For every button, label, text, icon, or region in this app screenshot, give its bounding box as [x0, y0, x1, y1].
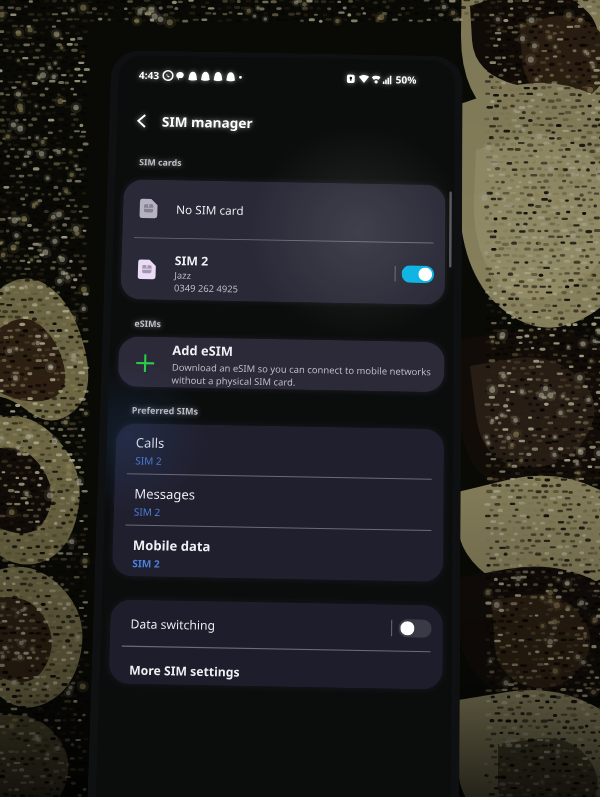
staticText: Add eSIM: [172, 341, 234, 360]
button[interactable]: Turn off SIM 2: [401, 265, 434, 283]
staticText: SIM 2: [134, 504, 161, 519]
staticText: 0349 262 4925: [174, 281, 238, 295]
button[interactable]: Data switching: [110, 599, 443, 652]
button[interactable]: SIM 2: [120, 238, 445, 305]
staticText: Messages: [134, 484, 196, 503]
staticText: Jazz: [174, 269, 191, 282]
staticText: Mobile data: [133, 536, 211, 555]
button[interactable]: Data switching: [110, 599, 443, 652]
button[interactable]: Turn on data switching: [398, 619, 432, 638]
staticText: SIM cards: [139, 156, 182, 168]
staticText: Download an eSIM so you can connect to m…: [171, 361, 432, 391]
staticText: SIM cards: [139, 156, 182, 168]
staticText: 4:43: [139, 68, 159, 82]
staticText: SIM 2: [135, 453, 162, 468]
button[interactable]: Messages: [113, 474, 444, 530]
staticText: SIM 2: [132, 556, 161, 571]
button[interactable]: More SIM settings: [108, 646, 443, 690]
staticText: No SIM card: [176, 201, 244, 218]
staticText: Mobile data: [133, 536, 211, 555]
button[interactable]: Add eSIM: [118, 336, 445, 392]
staticText: Messages: [134, 484, 196, 503]
staticText: More SIM settings: [129, 661, 240, 680]
staticText: SIM 2: [174, 252, 208, 269]
staticText: eSIMs: [134, 317, 161, 329]
button[interactable]: Mobile data: [112, 525, 443, 582]
button[interactable]: No SIM card: [122, 179, 445, 243]
staticText: More SIM settings: [129, 661, 240, 680]
staticText: SIM manager: [162, 112, 253, 132]
button[interactable]: More SIM settings: [108, 646, 443, 690]
button[interactable]: No SIM card: [122, 179, 445, 243]
staticText: Add eSIM: [172, 341, 234, 360]
staticText: SIM 2: [135, 453, 162, 468]
button[interactable]: Calls: [115, 423, 444, 479]
staticText: 0349 262 4925: [174, 281, 238, 295]
staticText: Calls: [136, 433, 165, 452]
staticText: Data switching: [130, 615, 216, 633]
staticText: 50%: [395, 73, 417, 87]
staticText: Download an eSIM so you can connect to m…: [171, 361, 432, 391]
staticText: 4:43: [139, 68, 159, 82]
button[interactable]: Turn on data switching: [398, 619, 432, 638]
staticText: SIM 2: [174, 252, 208, 269]
staticText: Data switching: [130, 615, 216, 633]
button[interactable]: Mobile data: [112, 525, 443, 582]
staticText: Preferred SIMs: [132, 403, 199, 417]
staticText: SIM 2: [132, 556, 161, 571]
staticText: 50%: [395, 73, 417, 87]
staticText: SIM manager: [162, 112, 253, 132]
button[interactable]: Calls: [115, 423, 444, 479]
button[interactable]: Messages: [113, 474, 444, 530]
staticText: eSIMs: [134, 317, 161, 329]
button[interactable]: Back: [125, 105, 157, 136]
button[interactable]: Add eSIM: [118, 336, 445, 392]
staticText: No SIM card: [176, 201, 244, 218]
button[interactable]: SIM 2: [120, 238, 445, 305]
button[interactable]: Turn off SIM 2: [401, 265, 434, 283]
button[interactable]: Back: [125, 105, 157, 136]
staticText: Calls: [136, 433, 165, 452]
staticText: Preferred SIMs: [132, 403, 199, 417]
staticText: Jazz: [174, 269, 191, 282]
staticText: SIM 2: [134, 504, 161, 519]
